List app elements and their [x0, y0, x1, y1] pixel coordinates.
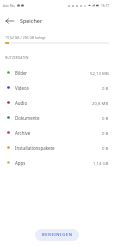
staticText: 0 B — [102, 130, 109, 136]
button[interactable]: Dokumente — [0, 110, 114, 125]
staticText: Speicher — [20, 17, 43, 24]
button[interactable]: Bilder — [0, 65, 114, 80]
staticText: 52,13 MB — [90, 70, 109, 76]
button[interactable]: Apps — [0, 155, 114, 170]
staticText: Audio — [15, 100, 28, 106]
staticText: Videos — [15, 85, 29, 91]
staticText: 0 B — [102, 145, 109, 151]
staticText: Dokumente — [15, 115, 40, 121]
staticText: Archive — [15, 130, 31, 136]
staticText: 16:17 — [101, 4, 110, 8]
staticText: 0 B — [102, 85, 109, 91]
button[interactable]: Installationspakete — [0, 140, 114, 155]
staticText: 19,62 GB / 256 GB belegt — [5, 35, 46, 40]
button[interactable]: Back — [2, 13, 17, 28]
staticText: 0 B — [102, 115, 109, 121]
button[interactable]: Videos — [0, 80, 114, 95]
staticText: 20,8 MB — [92, 100, 109, 106]
staticText: Installationspakete — [15, 145, 55, 151]
button[interactable]: Audio — [0, 95, 114, 110]
button[interactable]: BEREINIGEN — [35, 229, 79, 241]
staticText: NUTZERDATEN — [5, 56, 29, 60]
staticText: BEREINIGEN — [42, 232, 73, 238]
staticText: Bilder — [15, 70, 28, 76]
staticText: Auto Neu — [3, 4, 15, 8]
staticText: Apps — [15, 160, 26, 166]
button[interactable]: Archive — [0, 125, 114, 140]
staticText: 1,14 GB — [93, 160, 109, 166]
